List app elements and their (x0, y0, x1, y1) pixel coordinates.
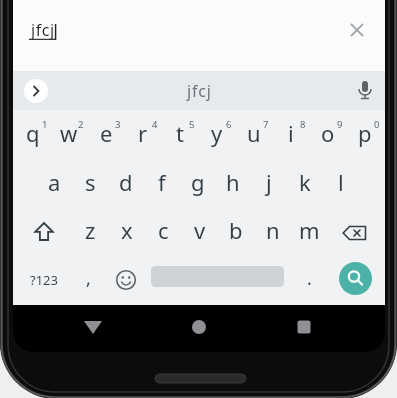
button[interactable]: f (144, 158, 180, 206)
staticText: l (338, 167, 344, 197)
button[interactable] (344, 18, 370, 44)
button[interactable] (353, 79, 377, 103)
button[interactable] (339, 221, 369, 245)
staticText: j (266, 167, 272, 197)
button[interactable]: ?123 (22, 264, 66, 296)
staticText: c (158, 215, 169, 245)
staticText: 8 (300, 118, 306, 131)
button[interactable]: t (162, 109, 198, 157)
staticText: 0 (374, 118, 380, 131)
button[interactable]: m (291, 206, 327, 254)
button[interactable]: u (236, 109, 272, 157)
staticText: w (60, 118, 78, 148)
staticText: a (48, 167, 61, 197)
button[interactable]: a (36, 158, 72, 206)
button[interactable]: n (255, 206, 291, 254)
staticText: b (229, 215, 243, 245)
button[interactable] (113, 267, 139, 293)
staticText: o (321, 118, 335, 148)
staticText: t (176, 118, 184, 148)
staticText: d (119, 167, 133, 197)
staticText: x (121, 215, 133, 245)
staticText: 7 (263, 118, 269, 131)
staticText: jfcj (31, 19, 55, 41)
staticText: e (100, 118, 113, 148)
button[interactable]: e (88, 109, 124, 157)
staticText: 3 (115, 118, 121, 131)
staticText: 2 (78, 118, 84, 131)
button[interactable] (80, 315, 106, 341)
button[interactable]: g (180, 158, 216, 206)
button[interactable]: z (72, 206, 108, 254)
staticText: q (26, 118, 40, 148)
button[interactable] (339, 262, 372, 295)
staticText: p (358, 118, 372, 148)
staticText: h (226, 167, 240, 197)
staticText: u (247, 118, 261, 148)
button[interactable]: v (182, 206, 218, 254)
button[interactable]: s (72, 158, 108, 206)
staticText: y (211, 118, 223, 148)
staticText: z (85, 215, 96, 245)
button[interactable]: x (109, 206, 145, 254)
staticText: g (191, 167, 205, 197)
staticText: s (85, 167, 96, 197)
button[interactable]: k (287, 158, 323, 206)
button[interactable]: c (145, 206, 181, 254)
button[interactable]: q (15, 109, 51, 157)
button[interactable]: d (108, 158, 144, 206)
button[interactable]: , (70, 254, 106, 302)
staticText: 5 (189, 118, 195, 131)
staticText: i (288, 118, 294, 148)
staticText: 4 (152, 118, 158, 131)
staticText: 1 (42, 118, 48, 131)
button[interactable]: l (323, 158, 359, 206)
button[interactable]: w (51, 109, 87, 157)
button[interactable]: j (251, 158, 287, 206)
staticText: ?123 (30, 271, 58, 289)
button[interactable]: h (215, 158, 251, 206)
button[interactable]: o (310, 109, 346, 157)
button[interactable]: r (125, 109, 161, 157)
button[interactable]: b (218, 206, 254, 254)
button[interactable]: . (291, 254, 327, 302)
staticText: r (138, 118, 148, 148)
button[interactable] (30, 218, 58, 246)
staticText: m (299, 215, 320, 245)
button[interactable]: p (347, 109, 383, 157)
button[interactable]: y (199, 109, 235, 157)
staticText: 9 (337, 118, 343, 131)
button[interactable]: i (273, 109, 309, 157)
staticText: . (307, 266, 312, 291)
staticText: jfcj (187, 80, 212, 102)
staticText: n (266, 215, 280, 245)
button[interactable] (24, 79, 48, 103)
staticText: v (194, 215, 206, 245)
button[interactable]: jfcj (13, 0, 385, 71)
staticText: 6 (226, 118, 232, 131)
staticText: , (86, 266, 91, 291)
staticText: f (158, 167, 166, 197)
button[interactable] (186, 315, 212, 341)
staticText: k (299, 167, 311, 197)
button[interactable] (291, 315, 317, 341)
